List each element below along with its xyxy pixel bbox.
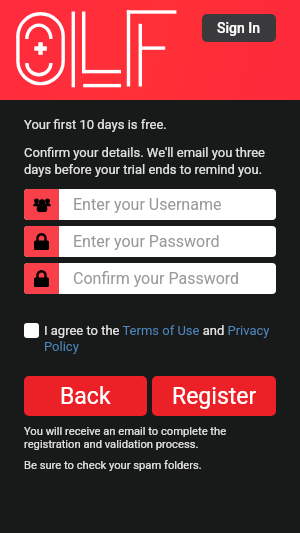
button[interactable]: Sign In <box>202 14 276 42</box>
staticText: You will receive an email to complete th… <box>24 425 227 451</box>
staticText: Your first 10 days is free. <box>24 117 167 132</box>
staticText: Register <box>172 383 257 410</box>
button[interactable]: Enter your Username <box>24 189 276 220</box>
staticText: Confirm your details. We'll email you th… <box>24 145 266 178</box>
staticText: Enter your Password <box>73 232 220 251</box>
staticText: Enter your Username <box>73 195 222 214</box>
staticText: Sign In <box>217 20 261 36</box>
button[interactable]: Confirm your Password <box>24 263 276 294</box>
button[interactable]: Register <box>152 376 276 416</box>
button[interactable]: Back <box>24 376 147 416</box>
button[interactable]: I agree checkbox <box>24 323 39 338</box>
staticText: I agree to the Terms of Use and Privacy … <box>44 323 276 354</box>
staticText: Back <box>60 383 111 410</box>
staticText: Be sure to check your spam folders. <box>24 459 202 472</box>
staticText: Confirm your Password <box>73 269 240 288</box>
button[interactable]: Enter your Password <box>24 226 276 257</box>
